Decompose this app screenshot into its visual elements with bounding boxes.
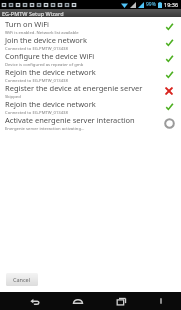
button[interactable]: Rejoin the device network <box>0 99 181 115</box>
button[interactable]: More options <box>153 293 169 309</box>
staticText: Activate energenie server interaction <box>5 115 135 125</box>
staticText: Skipped <box>5 94 21 99</box>
other: Step completed <box>165 39 174 48</box>
button[interactable]: Activate energenie server interaction <box>0 115 181 131</box>
staticText: Energenie server interaction activating.… <box>5 126 85 131</box>
staticText: Connected to EG-PMTW_013438 <box>5 46 68 51</box>
staticText: 99% <box>146 1 156 8</box>
other: Step completed <box>165 71 174 80</box>
staticText: Register the device at energenie server <box>5 83 143 93</box>
staticText: EG-PMTW Setup Wizard <box>2 10 64 17</box>
button[interactable]: Register the device at energenie server <box>0 83 181 99</box>
other: Step failed <box>165 87 173 95</box>
other: Step completed <box>165 103 174 112</box>
button[interactable]: Rejoin the device network <box>0 67 181 83</box>
button[interactable]: Join the device network <box>0 35 181 51</box>
staticText: Cancel <box>13 276 31 283</box>
other: Step completed <box>165 23 174 32</box>
staticText: Connected to EG-PMTW_013438 <box>5 110 68 115</box>
staticText: Rejoin the device network <box>5 99 96 109</box>
staticText: Turn on WiFi <box>5 19 49 29</box>
button[interactable]: Back <box>24 292 46 310</box>
button[interactable]: Recent apps <box>110 292 132 310</box>
staticText: Rejoin the device network <box>5 67 96 77</box>
staticText: Join the device network <box>5 35 87 45</box>
staticText: WiFi is enabled. Network list available <box>5 30 79 35</box>
staticText: Device is configured as repeater of gmb <box>5 62 84 67</box>
button[interactable]: Cancel <box>6 273 38 286</box>
staticText: 19:36 <box>164 1 179 8</box>
other: Step in progress <box>164 118 175 129</box>
button[interactable]: Configure the device WiFi <box>0 51 181 67</box>
staticText: Configure the device WiFi <box>5 51 95 61</box>
button[interactable]: Turn on WiFi <box>0 19 181 35</box>
button[interactable]: Home <box>67 292 89 310</box>
staticText: Connected to EG-PMTW_013438 <box>5 78 68 83</box>
other: Step completed <box>165 55 174 64</box>
